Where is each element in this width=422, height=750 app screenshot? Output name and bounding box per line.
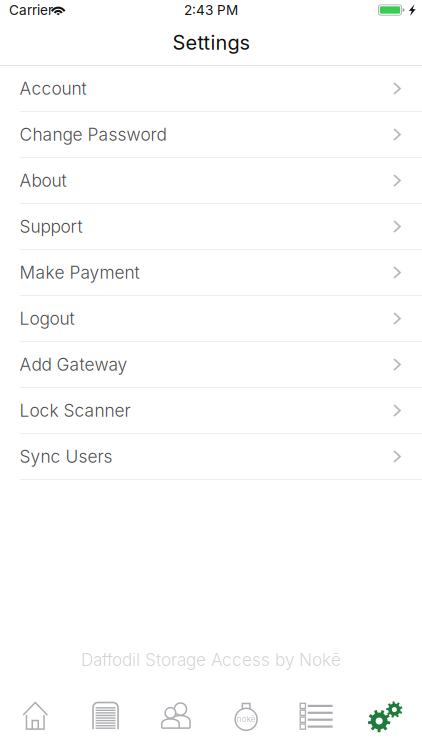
button[interactable]: Sync Users xyxy=(0,434,422,480)
button[interactable]: Make Payment xyxy=(0,250,422,296)
staticText: Account xyxy=(19,78,86,99)
button[interactable]: Activity xyxy=(281,698,352,750)
staticText: 2:43 PM xyxy=(184,2,238,18)
button[interactable]: Locks xyxy=(211,698,281,750)
button[interactable]: Users xyxy=(141,698,211,750)
button[interactable]: Home xyxy=(0,698,70,750)
staticText: Lock Scanner xyxy=(19,400,130,421)
staticText: Change Password xyxy=(19,124,166,145)
staticText: Daffodil Storage Access by Nokē xyxy=(81,649,341,670)
staticText: Carrier xyxy=(9,2,53,18)
button[interactable]: Change Password xyxy=(0,112,422,158)
staticText: Support xyxy=(19,216,82,237)
staticText: Add Gateway xyxy=(19,354,127,375)
button[interactable]: Support xyxy=(0,204,422,250)
button[interactable]: Account xyxy=(0,66,422,112)
button[interactable]: Logout xyxy=(0,296,422,342)
button[interactable]: Lock Scanner xyxy=(0,388,422,434)
staticText: About xyxy=(19,170,66,191)
button[interactable]: Settings xyxy=(352,698,422,750)
staticText: Logout xyxy=(19,308,74,329)
staticText: Sync Users xyxy=(19,446,112,467)
staticText: nokē xyxy=(237,714,256,724)
staticText: Settings xyxy=(172,30,249,55)
button[interactable]: Add Gateway xyxy=(0,342,422,388)
button[interactable]: About xyxy=(0,158,422,204)
staticText: Make Payment xyxy=(19,262,139,283)
button[interactable]: Units xyxy=(70,698,141,750)
